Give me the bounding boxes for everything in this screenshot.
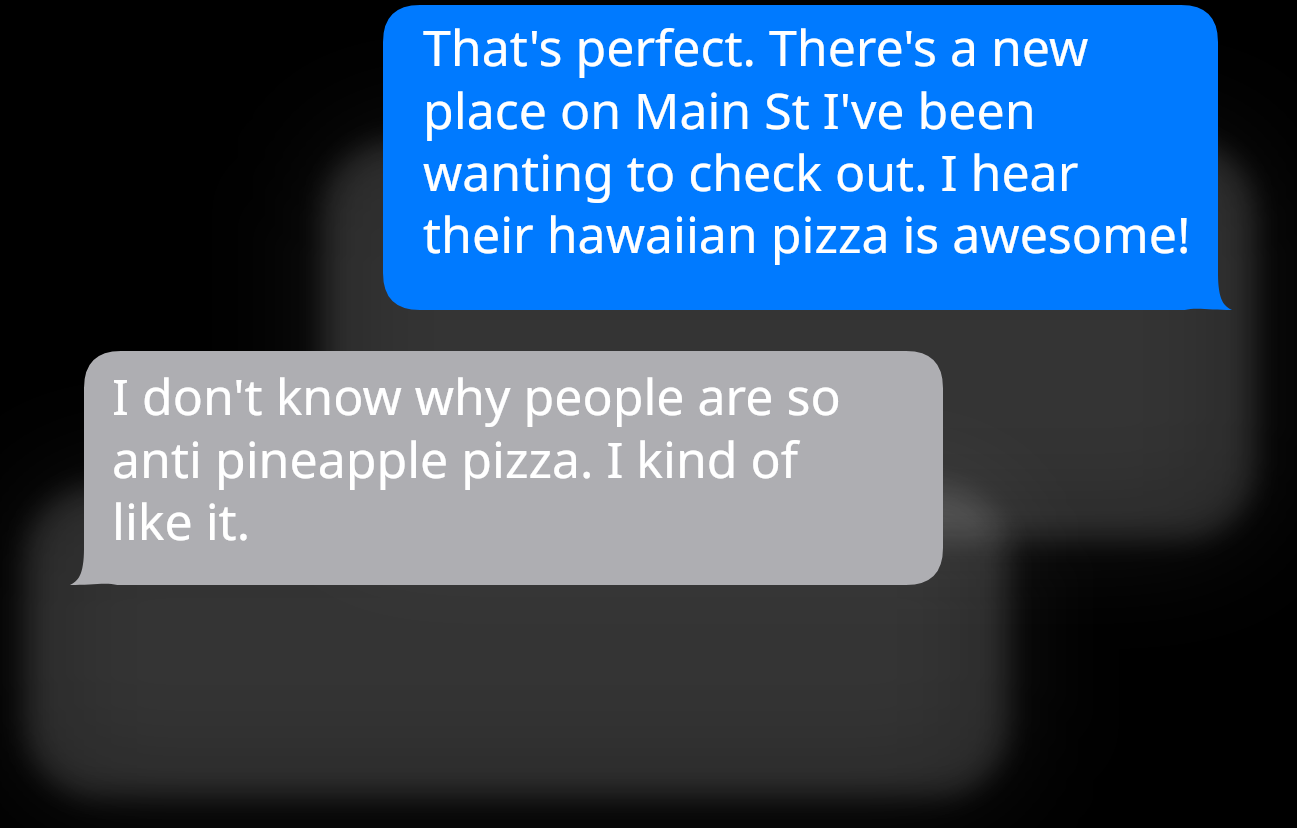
- button[interactable]: I don't know why people are so anti pine…: [70, 351, 943, 585]
- staticText: I don't know why people are so anti pine…: [112, 362, 882, 554]
- button[interactable]: That's perfect. There's a new place on M…: [383, 5, 1232, 310]
- staticText: That's perfect. There's a new place on M…: [423, 13, 1193, 267]
